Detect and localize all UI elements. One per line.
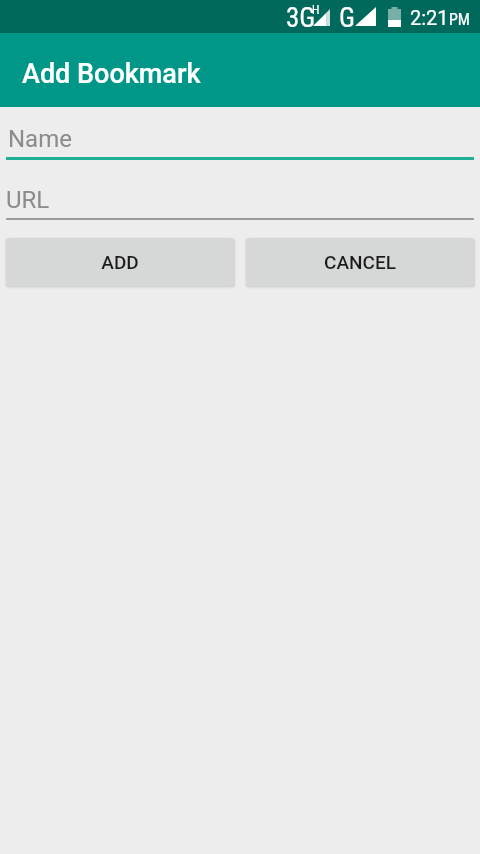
button[interactable]: CANCEL (246, 238, 474, 286)
staticText: PM (449, 10, 470, 29)
staticText: H (312, 3, 320, 17)
staticText: Name (8, 125, 72, 153)
other: Battery (388, 7, 401, 27)
other: Second SIM signal strength (355, 7, 376, 26)
other: Mobile data signal strength (313, 9, 330, 26)
staticText: CANCEL (324, 251, 396, 273)
button[interactable]: URL (0, 176, 480, 220)
staticText: ADD (101, 251, 139, 273)
button[interactable]: ADD (6, 238, 234, 286)
staticText: URL (6, 186, 50, 214)
staticText: 2:21 (410, 6, 449, 29)
button[interactable]: Name (0, 115, 480, 160)
staticText: 3G (286, 2, 316, 34)
staticText: G (339, 2, 355, 34)
staticText: Add Bookmark (22, 58, 201, 90)
